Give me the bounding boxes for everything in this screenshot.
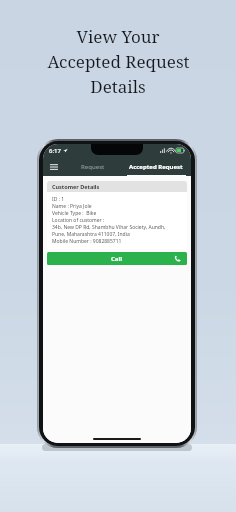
staticText: Name : Priya Jole xyxy=(52,203,92,210)
staticText: Call xyxy=(111,255,123,263)
button[interactable]: Request xyxy=(65,158,121,176)
button[interactable]: Call xyxy=(47,252,187,265)
staticText: Vehicle Type : Bike xyxy=(52,210,97,217)
staticText: Pune, Maharashtra 411007, India xyxy=(52,231,130,238)
staticText: Customer Details xyxy=(52,183,100,190)
staticText: Request xyxy=(81,163,105,171)
button[interactable]: Customer Details xyxy=(47,181,187,249)
staticText: 6:17 xyxy=(49,147,61,155)
staticText: Accepted Request xyxy=(47,50,190,73)
staticText: Mobile Number : 9082885711 xyxy=(52,238,122,245)
button[interactable]: Accepted Request xyxy=(121,158,191,176)
staticText: View Your xyxy=(76,25,160,48)
staticText: Details xyxy=(90,75,146,98)
staticText: ID : 1 xyxy=(52,196,65,203)
other: Call customer xyxy=(174,255,181,262)
staticText: Location of customer : xyxy=(52,217,105,224)
staticText: 34b, New DP Rd, Shambhu Vihar Society, A… xyxy=(52,224,166,231)
staticText: Accepted Request xyxy=(129,163,183,171)
button[interactable]: Open navigation menu xyxy=(43,158,65,176)
